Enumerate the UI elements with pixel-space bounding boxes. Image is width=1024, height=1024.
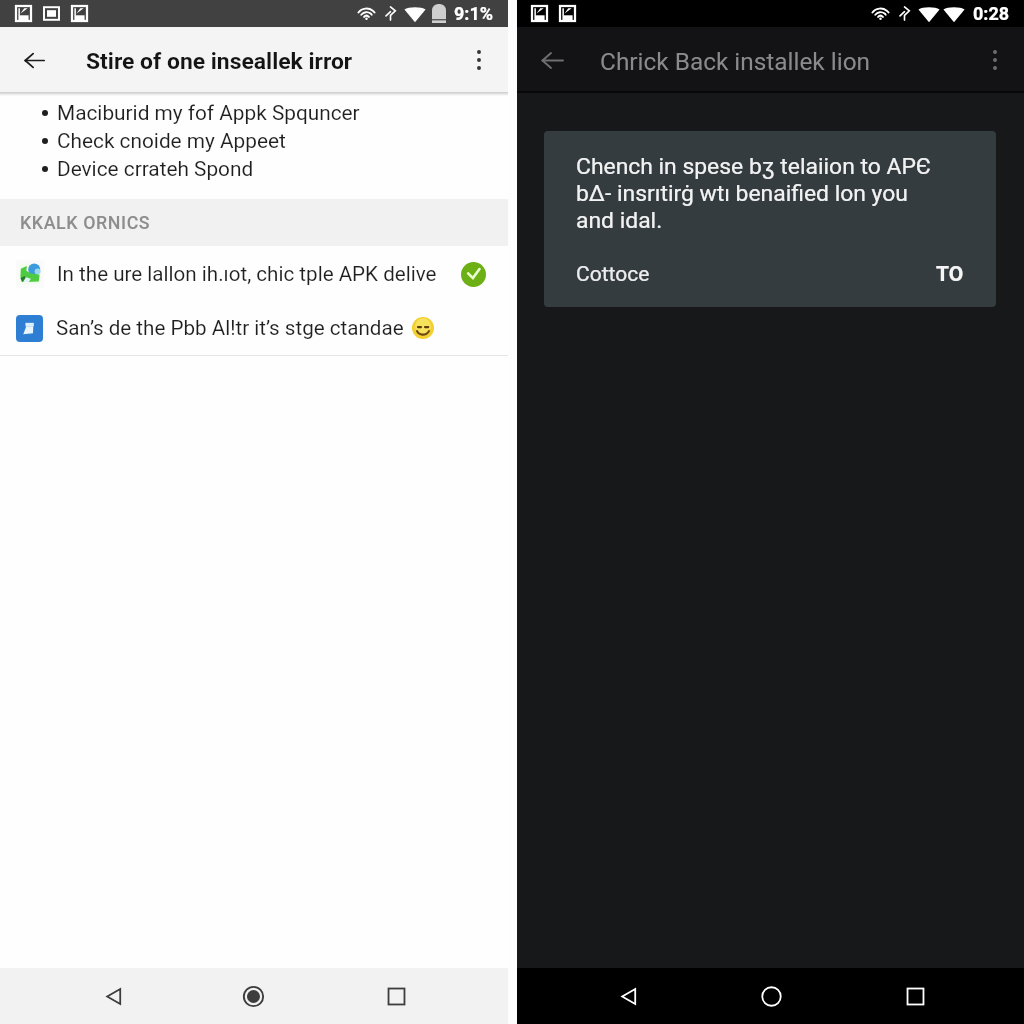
staticText: Stire of one inseallek irror xyxy=(86,48,353,75)
button[interactable]: More options xyxy=(450,31,508,89)
staticText: KKALK ORNICS xyxy=(20,212,151,233)
staticText: 0:28 xyxy=(973,3,1010,24)
staticText: Chrick Back installek lion xyxy=(600,47,871,76)
staticText: TO xyxy=(936,262,964,287)
button[interactable]: San’s de the Pbb Al!tr it’s stge ctandae xyxy=(0,301,508,355)
button[interactable]: Back xyxy=(600,968,656,1024)
button[interactable]: TO xyxy=(936,262,964,287)
button[interactable]: Back xyxy=(523,31,581,89)
button[interactable]: Recents xyxy=(368,968,424,1024)
button[interactable]: Home xyxy=(225,968,281,1024)
staticText: San’s de the Pbb Al!tr it’s stge ctandae xyxy=(56,316,404,340)
button[interactable]: Recents xyxy=(887,968,943,1024)
staticText: In the ure lallon ih.ıot, chic tple APK … xyxy=(57,262,437,286)
staticText: Device crrateh Spond xyxy=(57,157,254,181)
staticText: Maciburid my fof Appk Spquncer xyxy=(57,101,360,125)
staticText: Check cnoide my Appeet xyxy=(57,129,286,153)
staticText: Cottoce xyxy=(576,262,650,287)
staticText: 9:1% xyxy=(454,3,494,24)
button[interactable]: Back xyxy=(5,31,63,89)
button[interactable]: Cottoce xyxy=(576,262,650,287)
button[interactable]: Home xyxy=(743,968,799,1024)
button[interactable]: More options xyxy=(966,31,1024,89)
button[interactable]: In the ure lallon ih.ıot, chic tple APK … xyxy=(0,247,508,301)
button[interactable]: Back xyxy=(85,968,141,1024)
staticText: Chench in spese bʒ telaiion to APЄ bΔ- i… xyxy=(576,153,932,234)
